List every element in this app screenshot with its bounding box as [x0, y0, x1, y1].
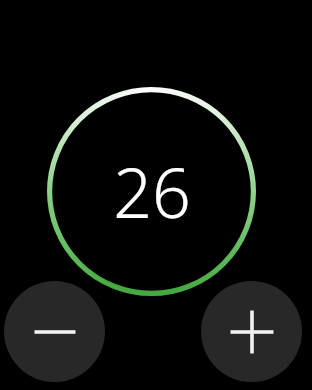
- button[interactable]: Decrease: [4, 281, 105, 382]
- button[interactable]: Increase: [201, 281, 302, 382]
- staticText: 26: [113, 145, 191, 238]
